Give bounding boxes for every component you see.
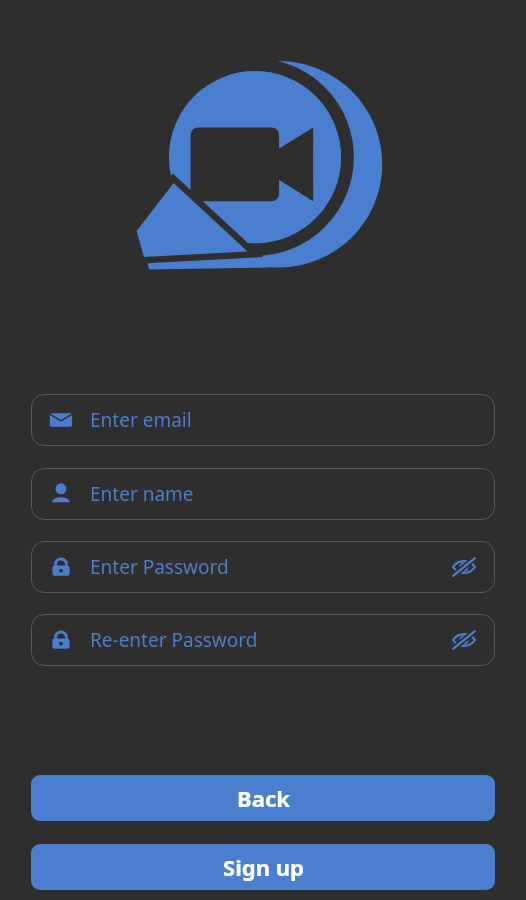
button[interactable]: Enter email	[31, 394, 495, 446]
staticText: Sign up	[223, 852, 304, 882]
staticText: Enter Password	[90, 554, 229, 580]
staticText: Re-enter Password	[90, 627, 258, 653]
staticText: Enter email	[90, 407, 192, 433]
staticText: Enter name	[90, 481, 194, 507]
button[interactable]: Enter Password	[31, 541, 495, 593]
button[interactable]: Sign up	[31, 844, 495, 890]
button[interactable]: Enter name	[31, 468, 495, 520]
button[interactable]: Toggle password visibility	[449, 552, 479, 582]
button[interactable]: Re-enter Password	[31, 614, 495, 666]
button[interactable]: Toggle password visibility	[449, 625, 479, 655]
staticText: Back	[237, 783, 290, 813]
button[interactable]: Back	[31, 775, 495, 821]
